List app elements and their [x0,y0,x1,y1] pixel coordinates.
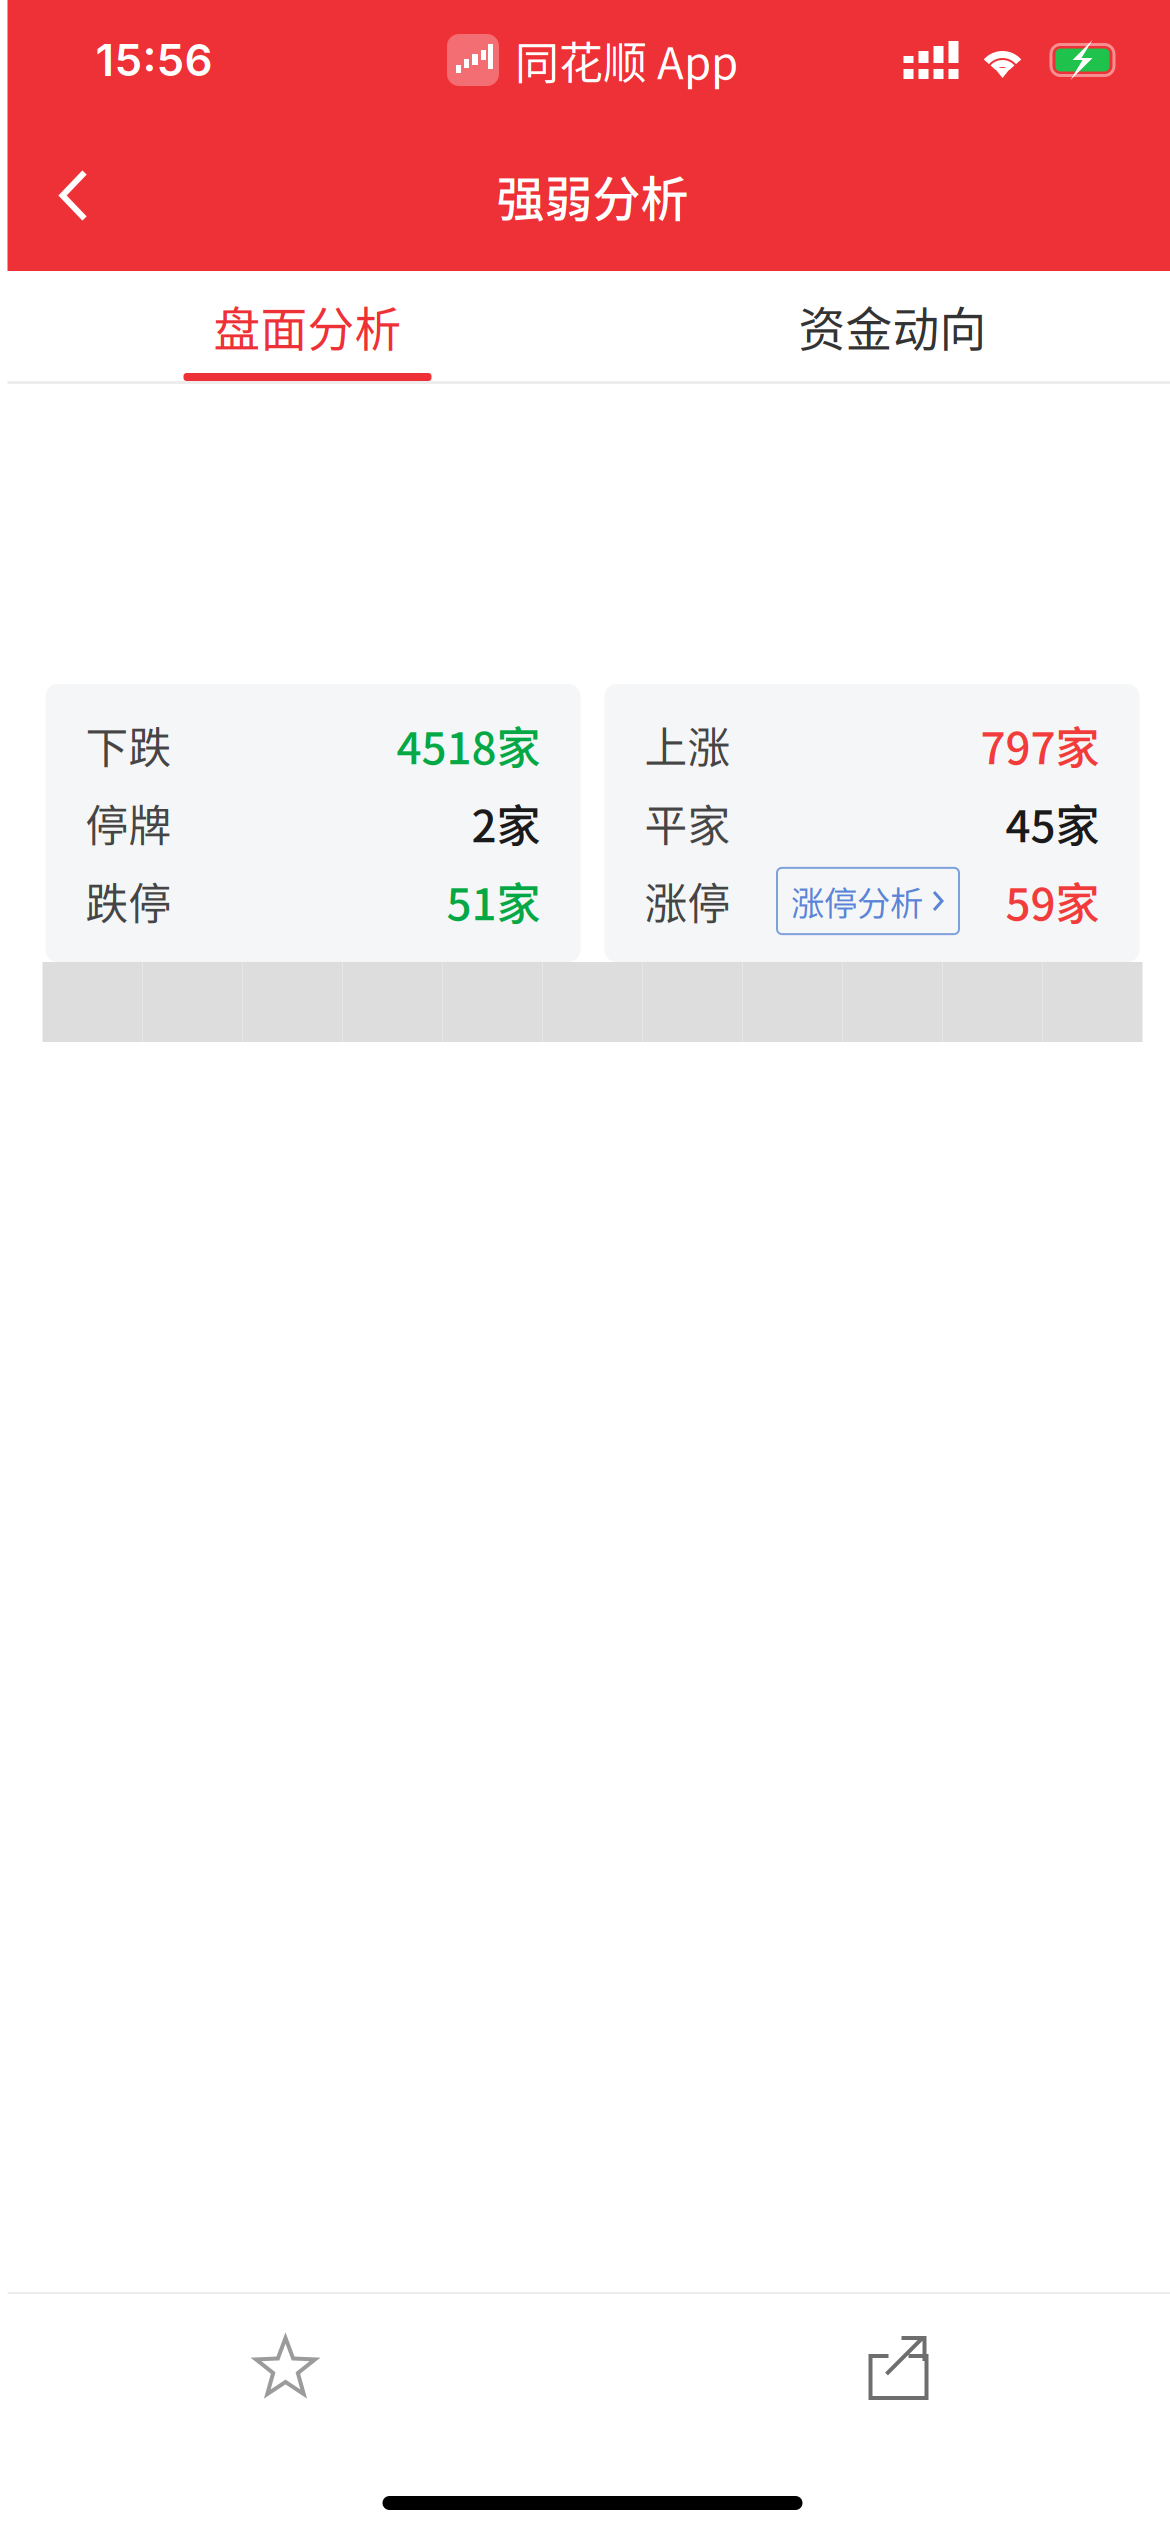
staticText: 停牌 [85,792,171,854]
staticText: 4518家 [396,713,540,777]
button[interactable]: 资金动向 [600,271,1170,381]
staticText: 涨停分析 [791,877,923,925]
staticText: 强弱分析 [496,161,688,230]
staticText: 51家 [446,869,540,933]
staticText: 15:56 [95,33,212,87]
button[interactable]: 盘面分析 [15,271,600,381]
staticText: 资金动向 [798,292,986,360]
staticText: 上涨 [644,714,730,776]
staticText: 盘面分析 [213,292,401,360]
staticText: 下跌 [85,714,171,776]
staticText: 797家 [980,713,1099,777]
button[interactable]: 收藏 [205,2304,365,2434]
staticText: 59家 [1005,869,1099,933]
staticText: 跌停 [85,870,171,932]
staticText: 45家 [1005,791,1099,855]
button[interactable]: 返回 [7,135,121,255]
staticText: 同花顺 App [515,28,738,92]
staticText: 2家 [471,791,540,855]
staticText: 涨停 [644,870,730,932]
staticText: 平家 [644,792,730,854]
button[interactable]: 涨停分析 [777,868,959,934]
button[interactable]: 分享 [819,2304,979,2434]
